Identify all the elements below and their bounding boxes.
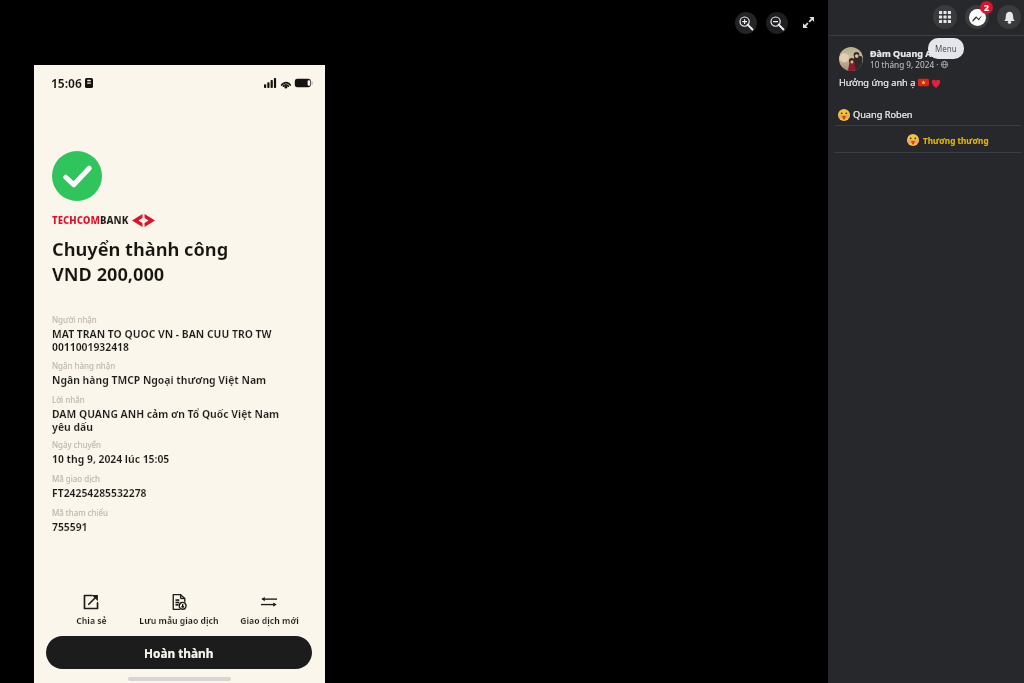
staticText: Giao dịch mới bbox=[240, 615, 299, 627]
staticText: Ngân hàng TMCP Ngoại thương Việt Nam bbox=[52, 373, 267, 387]
button[interactable]: Expand bbox=[797, 11, 819, 33]
staticText: 755591 bbox=[52, 520, 88, 534]
staticText: TECHCOM bbox=[52, 214, 100, 227]
staticText: Hoàn thành bbox=[144, 645, 214, 661]
button[interactable]: Menu bbox=[933, 5, 957, 29]
staticText: Người nhận bbox=[52, 314, 97, 325]
button[interactable]: Lưu mẫu giao dịch bbox=[122, 590, 236, 630]
staticText: MAT TRAN TO QUOC VN - BAN CUU TRO TW 001… bbox=[52, 327, 272, 354]
staticText: Mã giao dịch bbox=[52, 473, 100, 484]
button[interactable]: Giao dịch mới bbox=[212, 590, 326, 630]
staticText: Quang Roben bbox=[853, 108, 913, 121]
staticText: Lưu mẫu giao dịch bbox=[139, 615, 219, 627]
staticText: Chuyển thành công bbox=[52, 237, 229, 262]
staticText: FT24254285532278 bbox=[52, 486, 147, 500]
button[interactable]: Messenger bbox=[965, 5, 989, 29]
staticText: VND 200,000 bbox=[52, 262, 165, 287]
button[interactable]: Hoàn thành bbox=[46, 636, 312, 669]
staticText: Đàm Quang Anh bbox=[870, 47, 944, 59]
button[interactable]: Zoom in bbox=[735, 12, 757, 34]
staticText: 10 tháng 9, 2024 · bbox=[870, 59, 941, 70]
button[interactable]: Thương thương bbox=[835, 129, 1021, 151]
staticText: Ngày chuyển bbox=[52, 439, 101, 450]
button[interactable]: Notifications bbox=[997, 5, 1021, 29]
staticText: Hưởng ứng anh ạ bbox=[839, 76, 918, 89]
staticText: BANK bbox=[100, 214, 129, 227]
staticText: Menu bbox=[935, 43, 957, 54]
staticText: 15:06 bbox=[51, 75, 82, 91]
staticText: Thương thương bbox=[923, 135, 989, 146]
staticText: Ngân hàng nhận bbox=[52, 360, 116, 371]
button[interactable]: Zoom out bbox=[766, 12, 788, 34]
staticText: 2 bbox=[984, 2, 989, 14]
staticText: 10 thg 9, 2024 lúc 15:05 bbox=[52, 452, 170, 466]
staticText: Chia sẻ bbox=[76, 615, 107, 627]
staticText: Mã tham chiếu bbox=[52, 507, 109, 518]
button[interactable]: Chia sẻ bbox=[34, 590, 148, 630]
staticText: DAM QUANG ANH cảm ơn Tổ Quốc Việt Nam yê… bbox=[52, 407, 280, 434]
staticText: Lời nhắn bbox=[52, 394, 85, 405]
